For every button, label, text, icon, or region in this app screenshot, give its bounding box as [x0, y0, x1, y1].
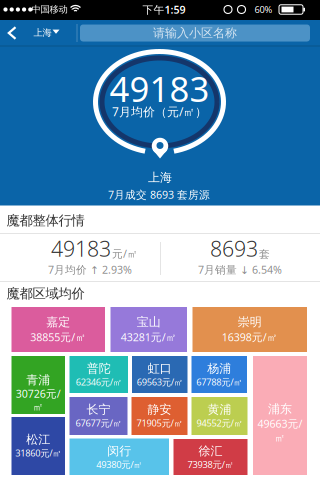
staticText: 浦东	[268, 402, 292, 416]
staticText: 徐汇	[198, 444, 222, 458]
staticText: 静安	[147, 402, 171, 417]
button[interactable]	[191, 356, 247, 393]
staticText: 虹口	[148, 361, 172, 376]
staticText: 青浦	[26, 373, 50, 387]
button[interactable]	[173, 439, 247, 475]
staticText: 49183	[51, 234, 111, 263]
staticText: 49663元/	[257, 416, 302, 431]
staticText: 49380元/㎡	[96, 458, 142, 471]
staticText: 43281元/㎡	[121, 330, 177, 344]
staticText: 31860元/㎡	[15, 447, 61, 459]
button[interactable]	[192, 307, 307, 352]
staticText: 魔都整体行情	[6, 212, 84, 229]
button[interactable]	[132, 356, 187, 393]
staticText: ㎡	[33, 400, 44, 413]
staticText: 宝山	[137, 315, 161, 329]
button[interactable]: 请输入小区名称	[80, 24, 310, 41]
staticText: 30726元/	[16, 386, 61, 401]
staticText: 杨浦	[207, 361, 231, 376]
staticText: 7月均价 ↑ 2.93%	[48, 262, 132, 277]
staticText: 67677元/㎡	[75, 417, 121, 429]
staticText: 黄浦	[207, 402, 231, 417]
staticText: 8693	[210, 234, 258, 263]
staticText: 魔都区域均价	[6, 285, 84, 302]
staticText: 中国移动	[31, 4, 67, 15]
staticText: 松江	[26, 432, 50, 447]
staticText: 73938元/㎡	[187, 458, 233, 471]
staticText: 请输入小区名称	[153, 26, 237, 40]
button[interactable]	[69, 438, 169, 475]
staticText: 69563元/㎡	[137, 376, 183, 388]
staticText: 67788元/㎡	[196, 376, 242, 388]
staticText: 7月成交 8693 套房源	[108, 187, 210, 202]
staticText: 下午1:59	[142, 2, 185, 17]
staticText: 49183	[109, 65, 209, 111]
button[interactable]	[69, 397, 127, 435]
staticText: 上海	[148, 170, 172, 185]
button[interactable]	[253, 356, 307, 475]
button[interactable]	[11, 356, 65, 414]
staticText: 元/㎡	[112, 246, 138, 261]
staticText: 上海	[33, 27, 51, 38]
button[interactable]	[11, 307, 105, 352]
staticText: 普陀	[87, 361, 111, 376]
staticText: 长宁	[86, 402, 110, 417]
staticText: 套	[259, 248, 270, 261]
staticText: 16398元/㎡	[222, 330, 278, 344]
staticText: 62346元/㎡	[76, 376, 122, 388]
staticText: 崇明	[238, 315, 262, 329]
staticText: 94552元/㎡	[196, 417, 242, 429]
staticText: 38855元/㎡	[30, 330, 86, 344]
staticText: 闵行	[107, 444, 131, 458]
staticText: 7月销量 ↓ 6.54%	[198, 262, 282, 277]
staticText: 60%	[254, 3, 272, 16]
button[interactable]	[191, 397, 247, 435]
staticText: 71905元/㎡	[136, 417, 182, 429]
button[interactable]: 上海	[0, 20, 72, 46]
staticText: ㎡	[274, 431, 285, 444]
button[interactable]	[131, 397, 187, 435]
staticText: 嘉定	[46, 315, 70, 329]
staticText: 7月均价（元/㎡）	[112, 103, 207, 119]
button[interactable]	[69, 356, 128, 393]
button[interactable]	[110, 307, 187, 352]
button[interactable]	[11, 417, 65, 475]
